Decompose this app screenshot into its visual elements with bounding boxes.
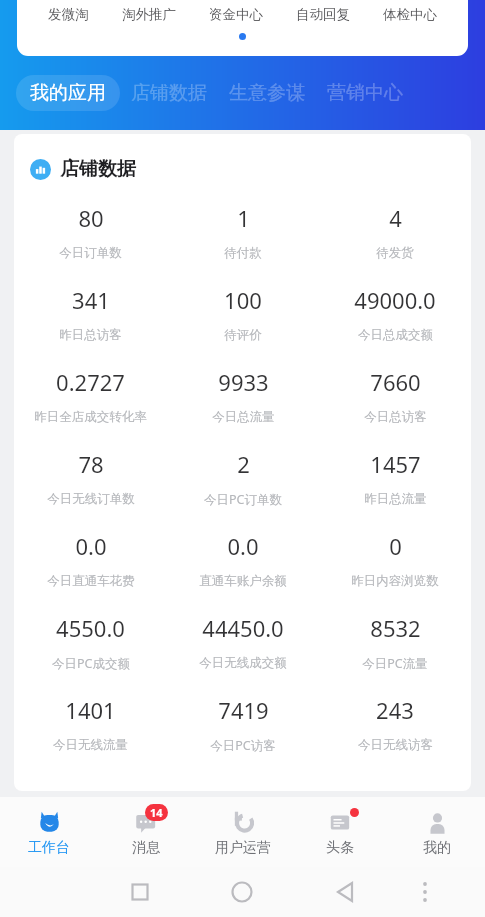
- staticText: 今日总访客: [364, 409, 427, 425]
- staticText: 我的应用: [30, 81, 106, 105]
- button[interactable]: 341: [14, 279, 167, 343]
- button[interactable]: 7419: [167, 689, 319, 754]
- staticText: 243: [376, 695, 414, 725]
- staticText: 4: [389, 203, 402, 233]
- staticText: 今日无线成交额: [199, 655, 287, 671]
- staticText: 4550.0: [56, 613, 125, 643]
- button[interactable]: 1457: [319, 443, 471, 507]
- staticText: 0: [389, 531, 402, 561]
- button[interactable]: 4550.0: [14, 607, 167, 672]
- staticText: 8532: [370, 613, 421, 643]
- staticText: 1: [237, 203, 250, 233]
- button[interactable]: 0.0: [167, 525, 319, 589]
- button[interactable]: 49000.0: [319, 279, 471, 343]
- button[interactable]: 我的: [388, 797, 485, 867]
- staticText: 生意参谋: [229, 81, 305, 105]
- button[interactable]: 发微淘: [46, 3, 91, 26]
- staticText: 淘外推广: [122, 6, 176, 23]
- staticText: 0.2727: [56, 367, 125, 397]
- staticText: 今日PC访客: [210, 737, 276, 754]
- staticText: 待评价: [224, 327, 262, 343]
- staticText: 7660: [370, 367, 421, 397]
- button[interactable]: 0.0: [14, 525, 167, 589]
- staticText: 自动回复: [296, 6, 350, 23]
- button[interactable]: 78: [14, 443, 167, 507]
- staticText: 待发货: [376, 245, 414, 261]
- button[interactable]: 我的应用: [16, 75, 120, 111]
- button[interactable]: 100: [167, 279, 319, 343]
- button[interactable]: 44450.0: [167, 607, 319, 671]
- button[interactable]: 体检中心: [381, 3, 439, 26]
- staticText: 今日直通车花费: [47, 573, 135, 589]
- staticText: 昨日总流量: [364, 491, 427, 507]
- staticText: 今日PC成交额: [52, 655, 130, 672]
- staticText: 14: [150, 805, 163, 820]
- staticText: 今日无线订单数: [47, 491, 135, 507]
- staticText: 今日无线流量: [53, 737, 128, 753]
- button[interactable]: 8532: [319, 607, 471, 672]
- staticText: 44450.0: [202, 613, 284, 643]
- button[interactable]: 2: [167, 443, 319, 508]
- button[interactable]: 1: [167, 197, 319, 261]
- staticText: 7419: [218, 695, 269, 725]
- staticText: 100: [224, 285, 262, 315]
- staticText: 1401: [65, 695, 116, 725]
- staticText: 今日订单数: [59, 245, 122, 261]
- button[interactable]: 9933: [167, 361, 319, 425]
- button[interactable]: 工作台: [0, 797, 97, 867]
- staticText: 工作台: [28, 839, 70, 857]
- button[interactable]: 0: [319, 525, 471, 589]
- button[interactable]: 生意参谋: [218, 75, 316, 111]
- staticText: 资金中心: [209, 6, 263, 23]
- button[interactable]: 243: [319, 689, 471, 753]
- staticText: 0.0: [75, 531, 107, 561]
- button[interactable]: 14: [97, 797, 194, 867]
- staticText: 今日总成交额: [358, 327, 433, 343]
- staticText: 昨日内容浏览数: [351, 573, 439, 589]
- staticText: 今日PC流量: [362, 655, 428, 672]
- button[interactable]: 店铺数据: [120, 75, 218, 111]
- button[interactable]: 7660: [319, 361, 471, 425]
- staticText: 消息: [132, 839, 160, 857]
- staticText: 49000.0: [354, 285, 436, 315]
- staticText: 昨日总访客: [59, 327, 122, 343]
- button[interactable]: 资金中心: [207, 3, 265, 26]
- button[interactable]: 淘外推广: [120, 3, 178, 26]
- staticText: 0.0: [227, 531, 259, 561]
- staticText: 今日PC订单数: [204, 491, 282, 508]
- staticText: 80: [78, 203, 104, 233]
- staticText: 用户运营: [215, 839, 271, 857]
- staticText: 营销中心: [327, 81, 403, 105]
- button[interactable]: 营销中心: [316, 75, 414, 111]
- staticText: 头条: [326, 839, 354, 857]
- staticText: 78: [78, 449, 104, 479]
- staticText: 直通车账户余额: [199, 573, 287, 589]
- button[interactable]: 1401: [14, 689, 167, 753]
- staticText: 2: [237, 449, 250, 479]
- staticText: 我的: [423, 839, 451, 857]
- button[interactable]: 自动回复: [294, 3, 352, 26]
- staticText: 昨日全店成交转化率: [34, 409, 147, 425]
- button[interactable]: 0.2727: [14, 361, 167, 425]
- staticText: 9933: [218, 367, 269, 397]
- staticText: 今日总流量: [212, 409, 275, 425]
- staticText: 店铺数据: [60, 157, 136, 181]
- staticText: 体检中心: [383, 6, 437, 23]
- button[interactable]: 用户运营: [194, 797, 291, 867]
- staticText: 待付款: [224, 245, 262, 261]
- button[interactable]: 80: [14, 197, 167, 261]
- staticText: 1457: [370, 449, 421, 479]
- staticText: 店铺数据: [131, 81, 207, 105]
- button[interactable]: 4: [319, 197, 471, 261]
- staticText: 发微淘: [48, 6, 89, 23]
- button[interactable]: 头条: [291, 797, 388, 867]
- staticText: 341: [72, 285, 110, 315]
- staticText: 今日无线访客: [358, 737, 433, 753]
